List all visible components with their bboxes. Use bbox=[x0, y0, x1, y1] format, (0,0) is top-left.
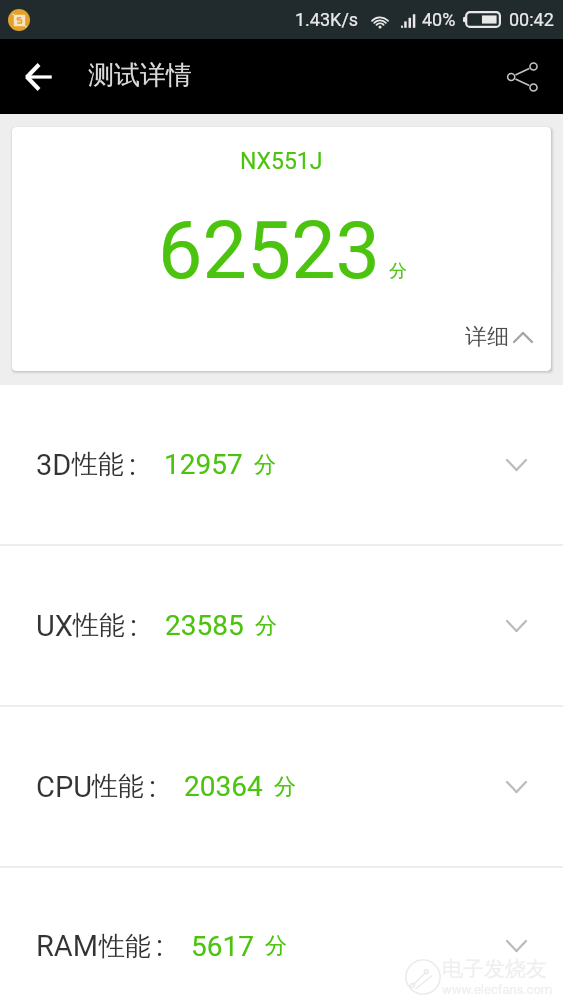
staticText: 分 bbox=[389, 260, 407, 283]
staticText: 详细 bbox=[465, 323, 509, 351]
staticText: NX551J bbox=[240, 148, 323, 175]
button[interactable]: CPU bbox=[0, 707, 563, 866]
staticText: : bbox=[149, 770, 157, 804]
staticText: 电子发烧友 bbox=[442, 956, 547, 982]
staticText: 23585 bbox=[165, 609, 244, 642]
button[interactable]: RAM bbox=[0, 868, 563, 1000]
staticText: UX bbox=[36, 609, 73, 643]
staticText: 5617 bbox=[191, 930, 254, 963]
button[interactable]: NX551J bbox=[12, 127, 551, 371]
staticText: 性能 bbox=[92, 770, 144, 803]
staticText: : bbox=[156, 929, 164, 963]
button[interactable]: Back bbox=[13, 52, 63, 102]
staticText: 62523 bbox=[158, 205, 380, 298]
staticText: 00:42 bbox=[509, 9, 554, 30]
staticText: 测试详情 bbox=[88, 59, 192, 92]
staticText: : bbox=[129, 448, 137, 482]
button[interactable]: Share bbox=[496, 51, 548, 103]
button[interactable]: 3D bbox=[0, 385, 563, 544]
staticText: 分 bbox=[265, 932, 287, 960]
staticText: 性能 bbox=[99, 930, 151, 963]
staticText: www.elecfans.com bbox=[442, 982, 553, 997]
staticText: RAM bbox=[36, 929, 99, 963]
button[interactable]: UX bbox=[0, 546, 563, 705]
staticText: 分 bbox=[254, 451, 276, 479]
staticText: 1.43K/s bbox=[295, 9, 359, 30]
staticText: 40% bbox=[422, 9, 456, 30]
staticText: 性能 bbox=[73, 609, 125, 642]
staticText: 分 bbox=[274, 773, 296, 801]
staticText: 12957 bbox=[164, 448, 243, 481]
staticText: CPU bbox=[36, 770, 92, 804]
staticText: 3D bbox=[36, 448, 72, 482]
staticText: 分 bbox=[255, 612, 277, 640]
staticText: 性能 bbox=[72, 448, 124, 481]
staticText: 20364 bbox=[184, 770, 263, 803]
staticText: : bbox=[130, 609, 138, 643]
